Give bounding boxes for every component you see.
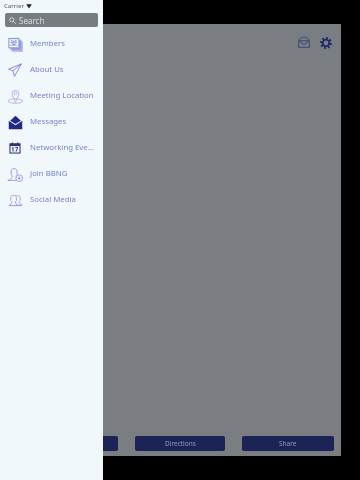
button[interactable]: About Us	[0, 56, 103, 82]
button[interactable]: Call	[28, 436, 118, 451]
staticText: Share	[279, 439, 297, 448]
staticText: Meeting Location	[30, 90, 94, 101]
button[interactable]: Meeting Location	[0, 82, 103, 108]
staticText: Members	[30, 38, 65, 49]
button[interactable]: Members	[0, 30, 103, 56]
staticText: Messages	[30, 116, 67, 127]
button[interactable]: Share	[242, 436, 334, 451]
button[interactable]: Join BBNG	[0, 160, 103, 186]
staticText: Social Media	[30, 194, 76, 205]
button[interactable]: Settings	[316, 33, 336, 53]
button[interactable]: Messages	[294, 32, 314, 52]
staticText: Join BBNG	[30, 168, 68, 179]
staticText: Directions	[165, 439, 196, 448]
staticText: Carrier	[4, 2, 24, 10]
button[interactable]: Directions	[135, 436, 225, 451]
staticText: Networking Eve…	[30, 142, 94, 153]
button[interactable]: Messages	[0, 108, 103, 134]
staticText: Search	[19, 15, 45, 26]
button[interactable]: Social Media	[0, 186, 103, 212]
button[interactable]: Search	[5, 13, 98, 27]
staticText: About Us	[30, 64, 64, 75]
button[interactable]: Networking Eve…	[0, 134, 103, 160]
